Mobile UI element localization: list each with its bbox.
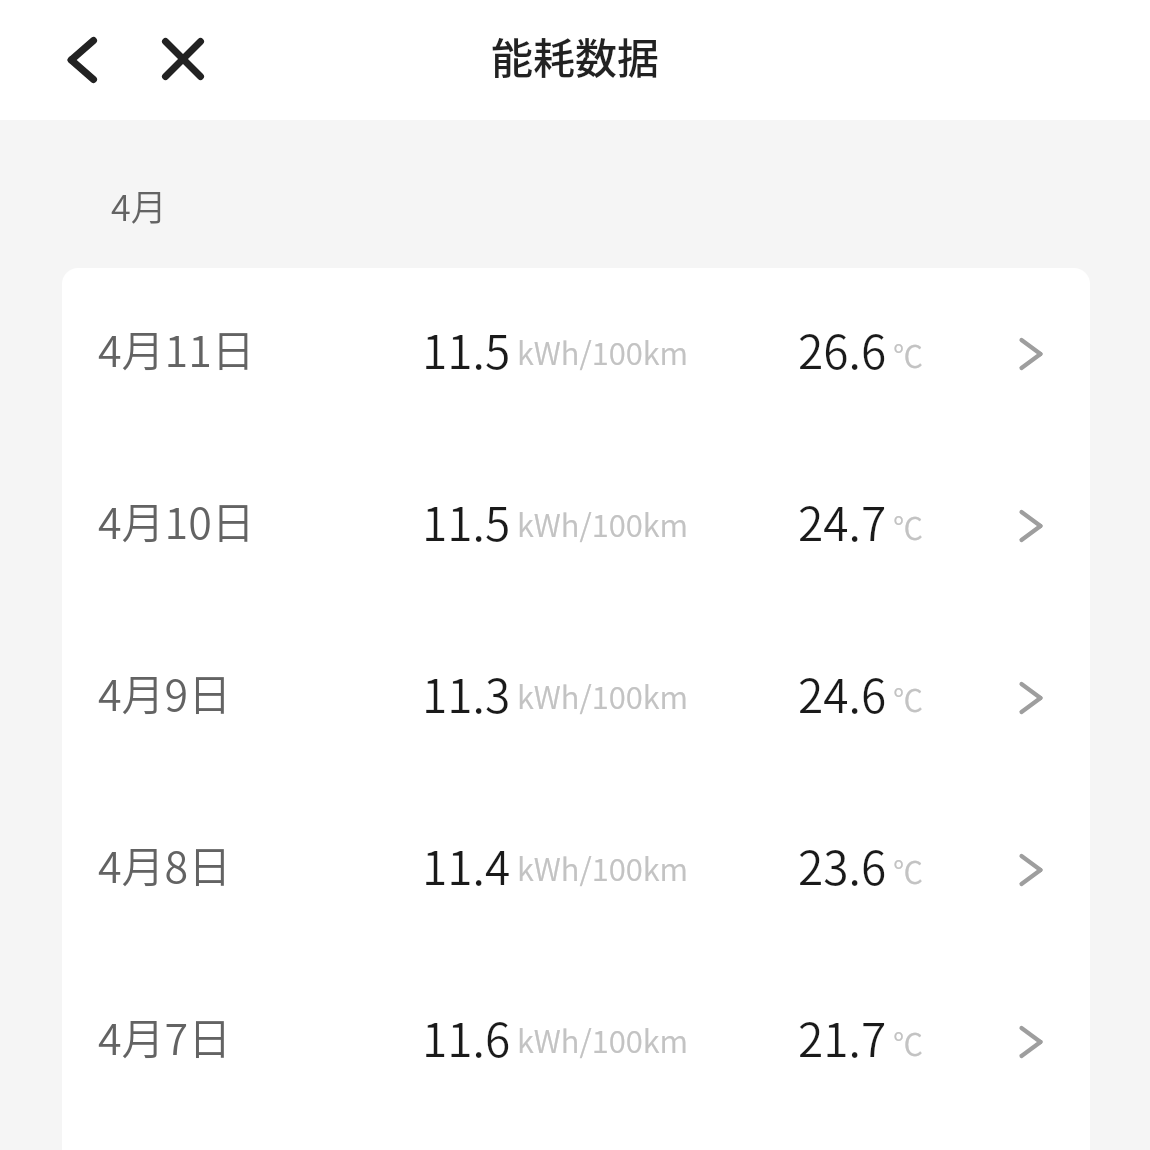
staticText: 4月9日 — [98, 661, 232, 723]
staticText: kWh/100km — [517, 673, 689, 718]
button[interactable]: Back — [50, 19, 131, 100]
staticText: kWh/100km — [517, 1017, 689, 1062]
staticText: 11.5 — [422, 316, 511, 383]
button[interactable]: 4月8日 — [62, 784, 1090, 956]
staticText: 11.6 — [422, 1004, 511, 1071]
staticText: 4月 — [111, 179, 167, 231]
staticText: ℃ — [893, 848, 923, 891]
staticText: 4月7日 — [98, 1005, 232, 1067]
staticText: 24.6 — [798, 660, 887, 727]
button[interactable]: 4月7日 — [62, 956, 1090, 1128]
staticText: 4月11日 — [98, 317, 255, 379]
staticText: 26.6 — [798, 316, 887, 383]
staticText: 23.6 — [798, 832, 887, 899]
staticText: 4月8日 — [98, 833, 232, 895]
other: Details — [1010, 333, 1052, 375]
other: Details — [1010, 505, 1052, 547]
staticText: 11.3 — [422, 660, 511, 727]
staticText: ℃ — [893, 504, 923, 547]
staticText: 4月10日 — [98, 489, 255, 551]
other: Details — [1010, 1021, 1052, 1063]
button[interactable]: 4月10日 — [62, 440, 1090, 612]
staticText: 21.7 — [798, 1004, 887, 1071]
staticText: kWh/100km — [517, 501, 689, 546]
button[interactable]: 4月9日 — [62, 612, 1090, 784]
staticText: ℃ — [893, 332, 923, 375]
staticText: 11.5 — [422, 488, 511, 555]
staticText: 能耗数据 — [491, 25, 660, 86]
button[interactable]: Close — [142, 18, 223, 99]
other: Details — [1010, 677, 1052, 719]
button[interactable]: 4月11日 — [62, 268, 1090, 440]
staticText: ℃ — [893, 1020, 923, 1063]
other: Details — [1010, 849, 1052, 891]
staticText: ℃ — [893, 676, 923, 719]
staticText: 24.7 — [798, 488, 887, 555]
staticText: kWh/100km — [517, 845, 689, 890]
staticText: 11.4 — [422, 832, 511, 899]
staticText: kWh/100km — [517, 329, 689, 374]
